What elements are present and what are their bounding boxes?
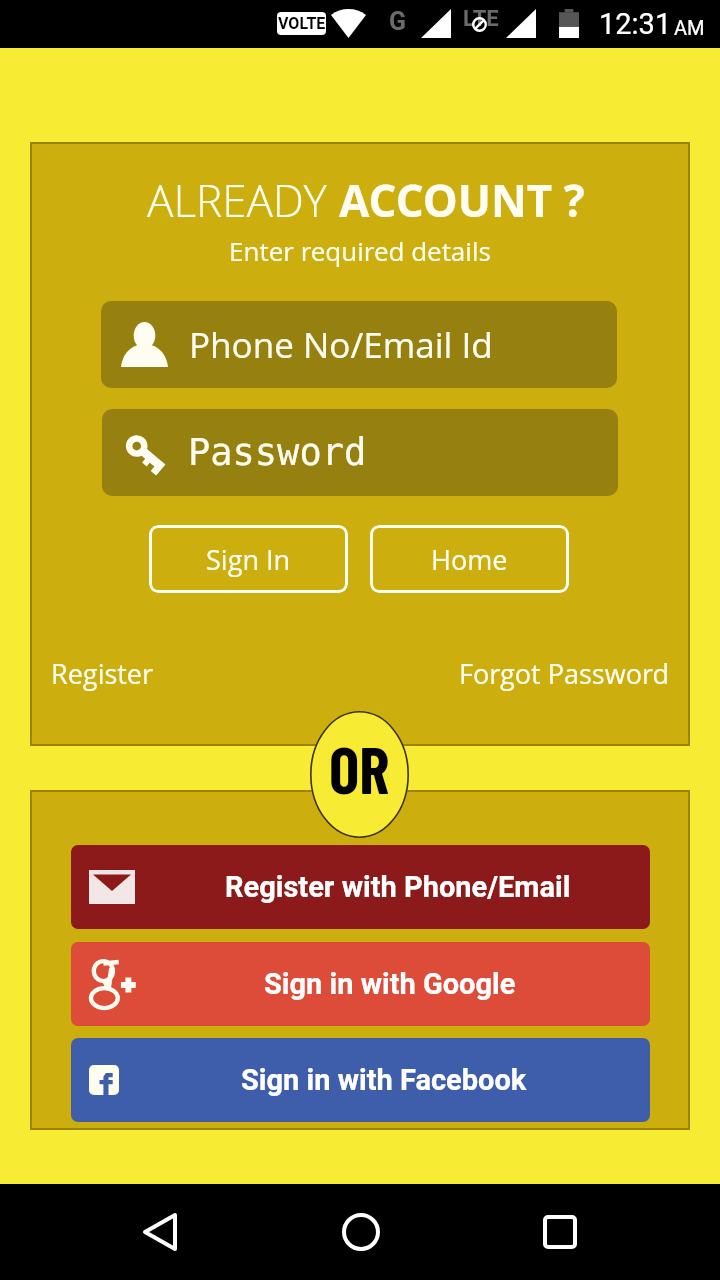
button[interactable]: Password — [102, 409, 618, 496]
staticText: Register with Phone/Email — [225, 870, 571, 904]
staticText: VOLTE — [278, 14, 326, 33]
button[interactable]: Sign In — [149, 525, 348, 593]
staticText: LTE — [463, 6, 499, 32]
staticText: Register — [51, 655, 154, 692]
staticText: Phone No/Email Id — [189, 321, 493, 369]
button[interactable]: Phone No/Email Id — [101, 301, 617, 388]
staticText: Home — [431, 541, 508, 578]
staticText: OR — [329, 730, 390, 807]
button[interactable]: Recent apps — [512, 1184, 608, 1280]
staticText: 12:31 — [599, 7, 672, 41]
staticText: Sign In — [206, 541, 291, 578]
button[interactable]: OR — [310, 711, 409, 838]
button[interactable]: Sign in with Google — [71, 942, 650, 1026]
button[interactable]: Home — [370, 525, 569, 593]
button[interactable]: Register — [46, 647, 159, 699]
staticText: Enter required details — [30, 233, 690, 268]
button[interactable]: Forgot Password — [454, 647, 675, 699]
staticText: Sign in with Facebook — [241, 1063, 527, 1097]
staticText: ACCOUNT ? — [339, 170, 585, 230]
button[interactable]: Register with Phone/Email — [71, 845, 650, 929]
staticText: ALREADY — [147, 170, 339, 230]
staticText: Password — [188, 431, 367, 474]
button[interactable]: Back — [112, 1184, 208, 1280]
staticText: Sign in with Google — [264, 967, 516, 1001]
button[interactable]: Sign in with Facebook — [71, 1038, 650, 1122]
button[interactable]: Home — [313, 1184, 409, 1280]
staticText: Forgot Password — [459, 655, 670, 692]
staticText: G — [389, 7, 407, 36]
staticText: AM — [674, 16, 705, 39]
